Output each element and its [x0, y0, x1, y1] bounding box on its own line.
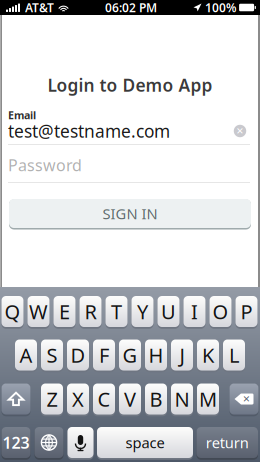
staticText: space	[125, 433, 164, 452]
staticText: 100%	[205, 0, 237, 15]
staticText: D	[70, 342, 85, 368]
staticText: G	[122, 342, 137, 368]
staticText: O	[212, 298, 228, 325]
button[interactable]: Shift	[1, 382, 30, 416]
button[interactable]: E	[53, 294, 75, 328]
staticText: test@testname.com	[8, 119, 170, 142]
button[interactable]: T	[105, 294, 127, 328]
button[interactable]: X	[67, 382, 89, 416]
staticText: Q	[4, 298, 20, 325]
button[interactable]: G	[119, 338, 141, 372]
staticText: H	[148, 342, 163, 368]
staticText: C	[97, 386, 110, 412]
button[interactable]: R	[79, 294, 101, 328]
staticText: S	[46, 342, 57, 368]
button[interactable]: A	[15, 338, 37, 372]
staticText: 123	[2, 432, 29, 453]
button[interactable]: P	[235, 294, 257, 328]
button[interactable]: J	[171, 338, 193, 372]
button[interactable]: Dictation	[67, 425, 93, 459]
staticText: ✕	[242, 394, 250, 404]
staticText: E	[59, 298, 70, 325]
staticText: U	[161, 298, 176, 325]
button[interactable]: space	[97, 425, 193, 459]
staticText: V	[124, 386, 136, 412]
staticText: Z	[46, 386, 57, 412]
button[interactable]: SIGN IN	[8, 197, 252, 229]
button[interactable]: H	[145, 338, 167, 372]
button[interactable]: Z	[41, 382, 63, 416]
staticText: I	[191, 298, 198, 325]
button[interactable]: Q	[1, 294, 23, 328]
staticText: Email	[8, 108, 36, 122]
staticText: ✕	[236, 126, 244, 136]
staticText: Password	[8, 154, 82, 176]
staticText: T	[111, 298, 122, 325]
button[interactable]: S	[41, 338, 63, 372]
staticText: Y	[137, 298, 148, 325]
button[interactable]: V	[119, 382, 141, 416]
button[interactable]: Next keyboard	[34, 425, 63, 459]
button[interactable]: K	[197, 338, 219, 372]
button[interactable]: Clear email	[231, 122, 249, 140]
staticText: Login to Demo App	[47, 73, 212, 96]
button[interactable]: return	[196, 425, 258, 459]
staticText: A	[19, 342, 32, 368]
staticText: K	[202, 342, 214, 368]
staticText: F	[99, 342, 109, 368]
staticText: B	[149, 386, 162, 412]
button[interactable]: O	[209, 294, 231, 328]
button[interactable]: W	[27, 294, 49, 328]
staticText: X	[72, 386, 84, 412]
staticText: W	[29, 298, 48, 325]
staticText: R	[84, 298, 96, 325]
button[interactable]: F	[93, 338, 115, 372]
staticText: P	[240, 298, 252, 325]
button[interactable]: I	[183, 294, 205, 328]
staticText: J	[179, 342, 184, 368]
button[interactable]: U	[157, 294, 179, 328]
staticText: SIGN IN	[102, 204, 157, 223]
staticText: M	[199, 386, 217, 412]
button[interactable]: C	[93, 382, 115, 416]
staticText: return	[206, 433, 249, 452]
button[interactable]: N	[171, 382, 193, 416]
staticText: L	[229, 342, 239, 368]
staticText: N	[174, 386, 189, 412]
button[interactable]: B	[145, 382, 167, 416]
button[interactable]: M	[197, 382, 219, 416]
button[interactable]: L	[223, 338, 245, 372]
button[interactable]: Y	[131, 294, 153, 328]
button[interactable]: Delete	[229, 382, 258, 416]
button[interactable]: 123	[1, 425, 30, 459]
staticText: 06:02 PM	[105, 0, 157, 15]
button[interactable]: D	[67, 338, 89, 372]
staticText: AT&T	[25, 0, 54, 15]
